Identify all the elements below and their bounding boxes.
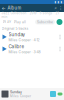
staticText: ⋮	[58, 5, 62, 10]
staticText: Jazz Collection · 2019 · 5 songs · 21 mi…	[1, 11, 58, 19]
staticText: Miles Cooper · 4:12	[8, 38, 39, 42]
button[interactable]: Cast	[50, 91, 56, 97]
staticText: Album	[7, 5, 21, 11]
button[interactable]: Subscribe	[35, 19, 55, 24]
staticText: ←	[1, 5, 5, 11]
staticText: Sunday	[8, 32, 25, 37]
button[interactable]: Sunday	[0, 31, 64, 43]
staticText: Calibre	[8, 44, 24, 49]
staticText: Play all	[14, 20, 26, 24]
staticText: Sunday	[10, 90, 22, 94]
staticText: Miles Cooper	[10, 94, 31, 98]
staticText: ▮ ▮ ▮	[54, 0, 62, 4]
staticText: Original 5 tracks	[1, 26, 28, 31]
staticText: Subscribe	[37, 20, 53, 24]
button[interactable]: Play	[57, 92, 62, 95]
button[interactable]: PLAY	[1, 19, 12, 24]
staticText: Miles Cooper · 3:48	[8, 50, 40, 54]
button[interactable]: Play all	[12, 19, 27, 24]
staticText: ⌕	[54, 6, 56, 10]
button[interactable]: Calibre	[0, 43, 64, 55]
button[interactable]: Shuffle play	[56, 19, 62, 25]
staticText: PLAY	[3, 20, 11, 24]
